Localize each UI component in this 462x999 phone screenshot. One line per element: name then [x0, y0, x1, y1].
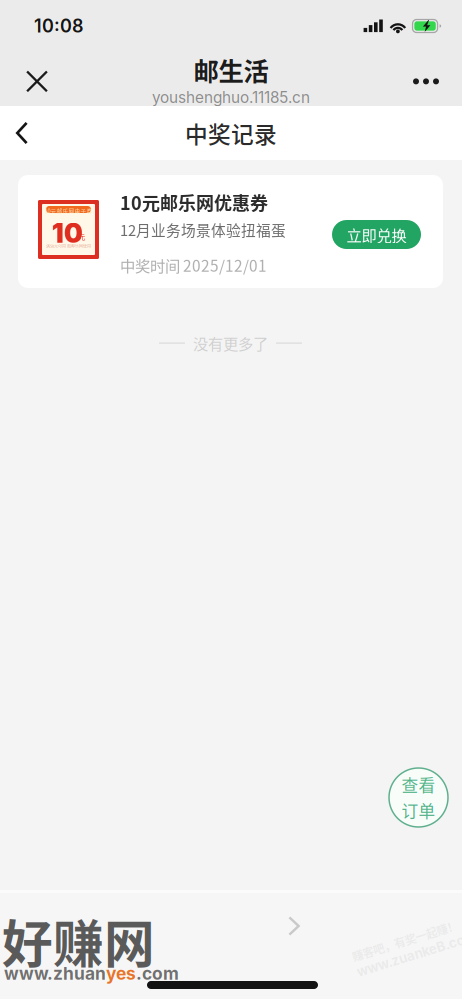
staticText: 中奖时间 2025/12/01: [120, 254, 267, 276]
staticText: 10:08: [34, 15, 84, 37]
staticText: 订单: [401, 798, 435, 823]
staticText: 中奖记录: [185, 117, 277, 149]
staticText: 邮生活: [193, 51, 268, 88]
staticText: 12月业务场景体验扭福蛋: [120, 219, 286, 240]
staticText: 10: [52, 217, 83, 249]
staticText: 查看: [401, 772, 435, 796]
button[interactable]: 立即兑换: [332, 220, 421, 249]
staticText: .com: [136, 963, 179, 984]
staticText: 赚客吧，有奖一起赚！: [352, 930, 462, 946]
staticText: youshenghuo.11185.cn: [152, 88, 310, 107]
staticText: www.zuankeB.com: [352, 946, 462, 962]
button[interactable]: 查看: [389, 768, 448, 827]
staticText: www.zhuan: [4, 963, 106, 984]
staticText: 元: [78, 231, 85, 242]
button[interactable]: Close mini program: [15, 59, 59, 103]
staticText: 10元邮乐网电子券: [44, 207, 92, 215]
staticText: 10元邮乐网优惠券: [120, 189, 268, 215]
staticText: 好赚网: [2, 904, 155, 977]
staticText: yes: [106, 963, 136, 984]
button[interactable]: More options: [402, 59, 450, 103]
button[interactable]: Back: [0, 108, 44, 158]
staticText: 没有更多了: [193, 332, 268, 354]
staticText: 立即兑换: [346, 223, 406, 246]
staticText: 满50元可用 限邮乐网使用: [46, 243, 91, 249]
